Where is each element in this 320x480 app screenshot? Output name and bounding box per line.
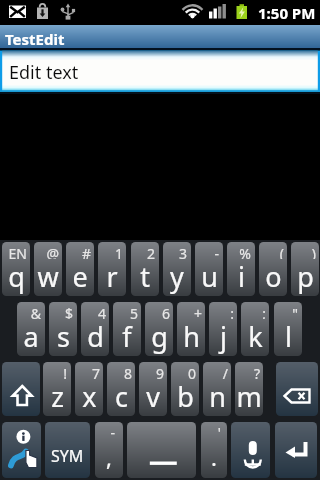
staticText: / — [222, 364, 228, 379]
staticText: b — [177, 378, 194, 415]
button[interactable]: x — [75, 362, 103, 416]
staticText: - — [110, 423, 115, 438]
staticText: r — [106, 258, 118, 295]
staticText: 4 — [97, 304, 106, 319]
staticText: ) — [311, 244, 316, 259]
staticText: 7 — [91, 364, 100, 379]
staticText: 2 — [146, 244, 155, 259]
staticText: @ — [46, 244, 59, 259]
staticText: z — [51, 378, 64, 415]
staticText: Edit text — [9, 60, 79, 85]
staticText: s — [57, 318, 70, 355]
button[interactable]: Enter — [275, 422, 317, 478]
staticText: w — [37, 258, 59, 295]
staticText: ' — [217, 423, 221, 438]
button[interactable]: k — [241, 302, 269, 356]
staticText: p — [297, 258, 314, 295]
button[interactable]: Space — [127, 422, 196, 478]
button[interactable]: f — [113, 302, 141, 356]
staticText: 0 — [187, 364, 196, 379]
staticText: x — [82, 378, 97, 415]
button[interactable]: o — [259, 242, 287, 296]
staticText: 3 — [178, 244, 187, 259]
staticText: 6 — [161, 304, 170, 319]
staticText: q — [8, 258, 25, 295]
staticText: " — [292, 304, 298, 319]
staticText: d — [87, 318, 104, 355]
staticText: + — [193, 304, 202, 319]
staticText: TestEdit — [5, 29, 65, 49]
button[interactable]: , — [95, 422, 123, 478]
button[interactable]: b — [171, 362, 199, 416]
staticText: t — [140, 258, 150, 295]
button[interactable]: d — [81, 302, 109, 356]
button[interactable]: Voice input — [231, 422, 270, 478]
staticText: o — [265, 258, 282, 295]
button[interactable]: e — [66, 242, 94, 296]
staticText: ; — [262, 304, 266, 319]
button[interactable]: y — [163, 242, 191, 296]
staticText: j — [220, 318, 227, 355]
staticText: f — [122, 318, 132, 355]
button[interactable]: g — [145, 302, 173, 356]
staticText: EN — [8, 244, 27, 259]
staticText: l — [285, 318, 292, 355]
staticText: - — [214, 244, 219, 259]
staticText: % — [239, 244, 251, 259]
staticText: SYM — [51, 445, 84, 467]
staticText: i — [238, 258, 245, 295]
button[interactable]: p — [291, 242, 319, 296]
button[interactable]: w — [34, 242, 62, 296]
button[interactable]: r — [98, 242, 126, 296]
staticText: y — [170, 258, 184, 295]
button[interactable]: . — [201, 422, 227, 478]
staticText: u — [201, 258, 218, 295]
button[interactable]: Shift — [2, 362, 40, 416]
button[interactable]: v — [139, 362, 167, 416]
staticText: g — [151, 318, 168, 355]
button[interactable]: Delete — [276, 362, 318, 416]
staticText: , — [106, 442, 112, 472]
button[interactable]: z — [43, 362, 71, 416]
staticText: v — [146, 378, 160, 415]
button[interactable] — [0, 48, 320, 94]
staticText: c — [115, 378, 128, 415]
button[interactable]: l — [274, 302, 302, 356]
staticText: # — [81, 244, 91, 259]
staticText: 5 — [129, 304, 138, 319]
staticText: a — [23, 318, 39, 355]
staticText: ( — [279, 244, 284, 259]
button[interactable]: n — [203, 362, 231, 416]
button[interactable]: c — [107, 362, 135, 416]
button[interactable]: s — [49, 302, 77, 356]
button[interactable]: m — [235, 362, 263, 416]
button[interactable]: u — [195, 242, 223, 296]
button[interactable]: j — [209, 302, 237, 356]
staticText: & — [30, 304, 41, 319]
staticText: 8 — [123, 364, 132, 379]
button[interactable]: q — [2, 242, 30, 296]
staticText: 9 — [155, 364, 164, 379]
staticText: k — [248, 318, 263, 355]
staticText: : — [230, 304, 234, 319]
staticText: ! — [63, 364, 67, 379]
button[interactable]: a — [17, 302, 45, 356]
staticText: 1 — [114, 244, 123, 259]
button[interactable]: Symbols — [45, 422, 90, 478]
staticText: . — [211, 442, 217, 472]
button[interactable]: t — [131, 242, 159, 296]
staticText: ? — [253, 364, 260, 379]
staticText: n — [209, 378, 226, 415]
button[interactable]: i — [227, 242, 255, 296]
staticText: $ — [64, 304, 73, 319]
staticText: m — [236, 378, 262, 415]
staticText: h — [183, 318, 200, 355]
button[interactable]: Input method — [2, 422, 41, 478]
staticText: 1:50 PM — [258, 3, 316, 22]
staticText: e — [72, 258, 88, 295]
button[interactable]: h — [177, 302, 205, 356]
